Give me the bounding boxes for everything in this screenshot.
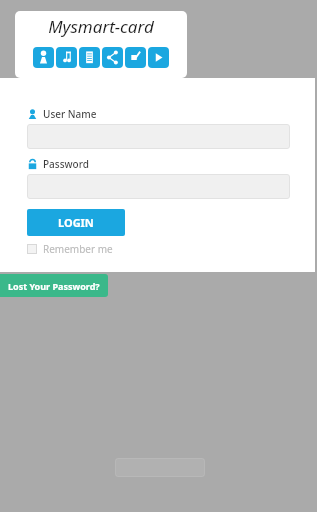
button[interactable]: Lost Your Password? <box>0 274 108 297</box>
staticText: Password <box>43 157 89 171</box>
button[interactable]: Contacts <box>125 47 146 68</box>
button[interactable]: Profile <box>33 47 54 68</box>
button[interactable]: Music <box>56 47 77 68</box>
staticText: LOGIN <box>58 215 94 230</box>
staticText: User Name <box>43 107 97 121</box>
button[interactable]: Remember me <box>27 242 113 256</box>
button[interactable] <box>27 124 290 149</box>
button[interactable] <box>27 174 290 199</box>
button[interactable]: Share <box>102 47 123 68</box>
staticText: Remember me <box>43 242 113 256</box>
button[interactable]: Play video <box>148 47 169 68</box>
staticText: Mysmart-card <box>48 15 154 38</box>
button[interactable]: Documents <box>79 47 100 68</box>
staticText: Lost Your Password? <box>8 280 100 292</box>
button[interactable]: LOGIN <box>27 209 125 236</box>
